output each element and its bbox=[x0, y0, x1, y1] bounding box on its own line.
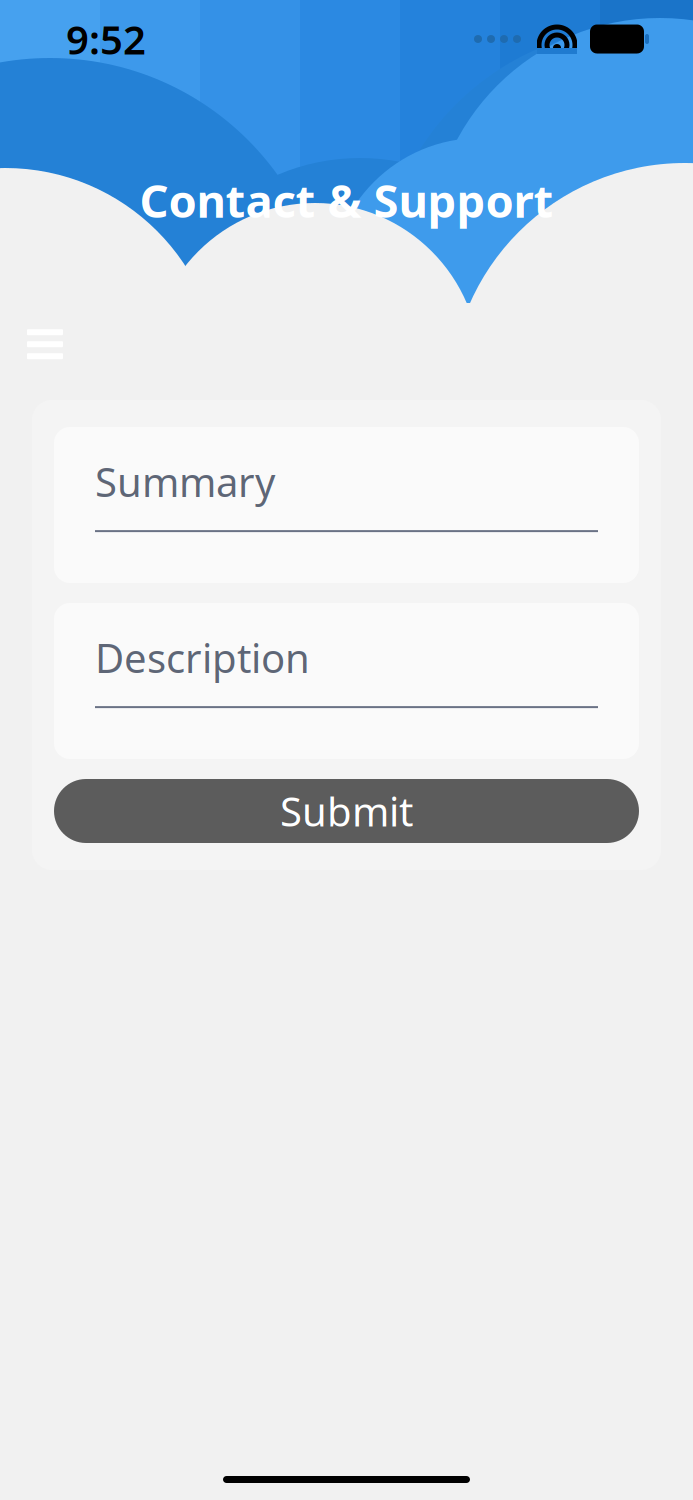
button[interactable]: Description bbox=[54, 603, 639, 759]
staticText: Submit bbox=[280, 784, 413, 837]
button[interactable]: Summary bbox=[54, 427, 639, 583]
staticText: Description bbox=[95, 631, 310, 684]
button[interactable]: Submit bbox=[54, 779, 639, 843]
staticText: Summary bbox=[95, 455, 275, 508]
staticText: 9:52 bbox=[66, 12, 146, 65]
staticText: Contact & Support bbox=[139, 170, 553, 230]
button[interactable]: Menu bbox=[13, 316, 77, 372]
